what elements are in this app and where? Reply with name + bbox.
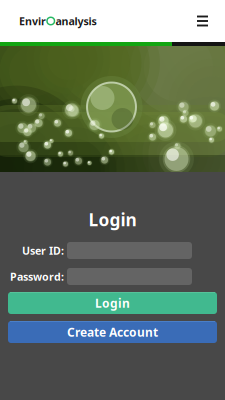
staticText: Password: [10,269,64,284]
staticText: Login [95,295,130,311]
staticText: User ID: [22,243,64,258]
staticText: Envir [19,14,46,28]
staticText: analysis [55,14,96,28]
button[interactable]: Create Account [8,321,217,343]
staticText: Login [88,208,136,231]
button[interactable]: Menu [193,12,212,30]
button[interactable]: Login [8,292,217,314]
staticText: Create Account [67,324,158,340]
